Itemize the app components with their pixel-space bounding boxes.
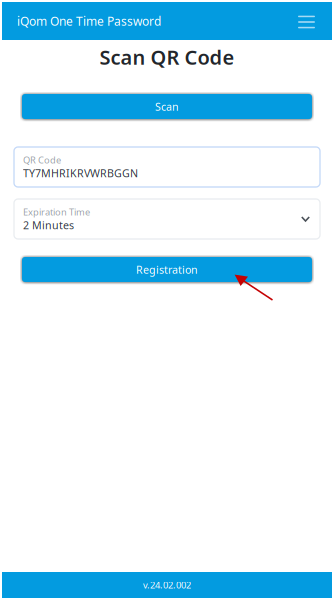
staticText: Scan	[155, 99, 179, 114]
staticText: v.24.02.002	[143, 579, 191, 591]
staticText: Scan QR Code	[99, 44, 234, 70]
staticText: TY7MHRIKRVWRBGGN	[23, 166, 138, 180]
staticText: QR Code	[23, 154, 61, 166]
staticText: Expiration Time	[23, 206, 90, 218]
button[interactable]: Registration	[22, 257, 312, 282]
staticText: 2 Minutes	[23, 218, 74, 232]
staticText: Registration	[136, 262, 198, 277]
button[interactable]: Menu	[293, 7, 320, 35]
staticText: iQom One Time Password	[17, 13, 161, 29]
button[interactable]: Scan	[22, 94, 312, 119]
button[interactable]: QR Code	[14, 147, 320, 187]
button[interactable]: Expiration Time	[14, 199, 320, 239]
